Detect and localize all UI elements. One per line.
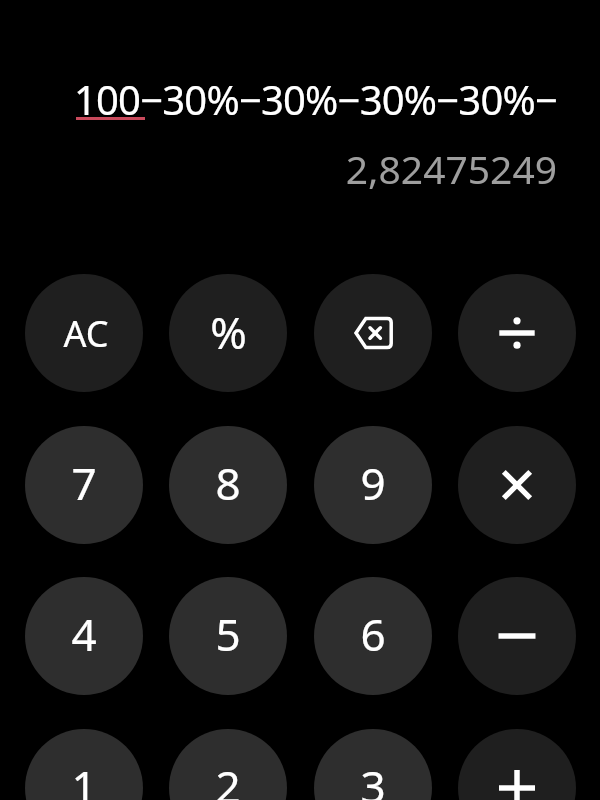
staticText: 100−30%−30%−30%−30%− bbox=[0, 72, 557, 126]
staticText: % bbox=[210, 302, 247, 362]
button[interactable]: 3 bbox=[314, 729, 432, 800]
button[interactable]: Backspace bbox=[314, 274, 432, 392]
staticText: 6 bbox=[360, 604, 386, 664]
button[interactable]: 9 bbox=[314, 426, 432, 544]
button[interactable]: Add bbox=[458, 729, 576, 800]
staticText: 7 bbox=[71, 453, 97, 513]
staticText: 2 bbox=[215, 756, 241, 800]
button[interactable]: 5 bbox=[169, 577, 287, 695]
button[interactable]: 100−30%−30%−30%−30%− bbox=[0, 72, 557, 126]
staticText: 9 bbox=[360, 453, 386, 513]
button[interactable]: Multiply bbox=[458, 426, 576, 544]
button[interactable]: 6 bbox=[314, 577, 432, 695]
button[interactable]: 4 bbox=[25, 577, 143, 695]
button[interactable]: 7 bbox=[25, 426, 143, 544]
staticText: 8 bbox=[215, 453, 241, 513]
staticText: AC bbox=[63, 309, 109, 358]
button[interactable]: 8 bbox=[169, 426, 287, 544]
button[interactable]: 1 bbox=[25, 729, 143, 800]
staticText: 4 bbox=[71, 604, 97, 664]
staticText: 3 bbox=[360, 756, 386, 800]
button[interactable]: 2 bbox=[169, 729, 287, 800]
button[interactable]: AC bbox=[25, 274, 143, 392]
button[interactable]: Divide bbox=[458, 274, 576, 392]
staticText: 2,82475249 bbox=[0, 142, 557, 195]
staticText: 5 bbox=[215, 604, 241, 664]
button[interactable]: % bbox=[169, 274, 287, 392]
staticText: 1 bbox=[71, 756, 97, 800]
button[interactable]: Subtract bbox=[458, 577, 576, 695]
